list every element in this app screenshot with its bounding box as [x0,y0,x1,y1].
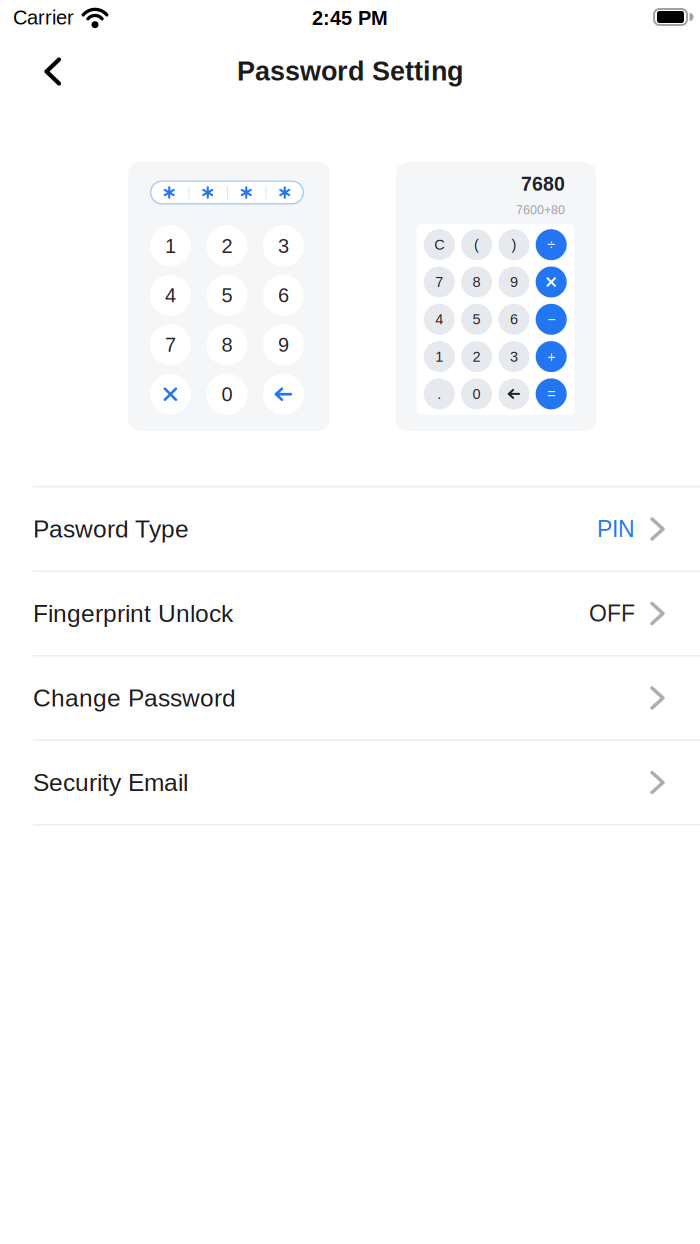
staticText: 2 [221,235,232,257]
staticText: Fingerprint Unlock [33,600,233,627]
button[interactable]: ← [498,378,529,409]
staticText: 3 [278,235,289,257]
button[interactable]: 0 [206,374,247,415]
button[interactable]: Delete [263,374,304,415]
staticText: 7 [435,274,443,290]
staticText: + [547,348,555,365]
button[interactable]: Cancel [150,374,191,415]
button[interactable]: 4 [424,304,455,335]
staticText: OFF [589,601,635,626]
button[interactable]: Back [0,36,61,86]
staticText: . [437,386,441,402]
button[interactable]: C [424,229,455,260]
staticText: Change Password [33,684,236,712]
staticText: 6 [278,284,289,306]
button[interactable]: Pasword Type [0,487,700,570]
button[interactable]: + [536,341,567,372]
staticText: Pasword Type [33,515,189,543]
button[interactable]: − [536,304,567,335]
button[interactable]: Security Email [0,741,700,824]
button[interactable]: ÷ [536,229,567,260]
button[interactable]: 3 [263,225,304,266]
staticText: 6 [510,311,518,327]
button[interactable]: = [536,378,567,409]
staticText: Carrier [13,6,74,29]
staticText: 9 [510,274,518,290]
button[interactable]: 4 [150,275,191,316]
staticText: Security Email [33,769,188,796]
button[interactable]: Change Password [0,656,700,739]
button[interactable]: Fingerprint Unlock [0,572,700,655]
staticText: 7600+80 [516,203,565,217]
staticText: ( [474,237,479,253]
button[interactable]: 6 [263,275,304,316]
button[interactable]: 1 [424,341,455,372]
staticText: − [547,311,555,327]
staticText: ÷ [547,237,555,253]
staticText: 5 [221,284,232,306]
staticText: 1 [435,348,443,365]
button[interactable]: 2 [461,341,492,372]
button[interactable]: 7 [424,266,455,297]
staticText: 0 [473,386,481,402]
staticText: C [434,237,444,253]
button[interactable]: × [536,266,567,297]
button[interactable]: 9 [263,324,304,365]
staticText: 8 [473,274,481,290]
staticText: 9 [278,334,289,356]
staticText: ) [511,237,516,253]
button[interactable]: ) [498,229,529,260]
staticText: 4 [435,311,443,327]
staticText: 2 [473,348,481,365]
staticText: 7680 [521,173,565,195]
staticText: 7 [165,334,176,356]
staticText: 1 [165,235,176,257]
button[interactable]: 2 [206,225,247,266]
staticText: 2:45 PM [312,7,388,29]
button[interactable]: 0 [461,378,492,409]
staticText: 8 [221,334,232,356]
button[interactable]: 8 [206,324,247,365]
staticText: 4 [165,284,176,306]
staticText: 3 [510,348,518,365]
staticText: 0 [221,383,232,405]
button[interactable]: 5 [461,304,492,335]
staticText: PIN [597,516,635,542]
staticText: Password Setting [237,56,463,86]
button[interactable]: . [424,378,455,409]
staticText: 5 [473,311,481,327]
button[interactable]: 3 [498,341,529,372]
button[interactable]: 1 [150,225,191,266]
button[interactable]: 8 [461,266,492,297]
button[interactable]: 9 [498,266,529,297]
button[interactable]: 6 [498,304,529,335]
button[interactable]: 5 [206,275,247,316]
button[interactable]: 7 [150,324,191,365]
button[interactable]: ( [461,229,492,260]
staticText: = [547,386,555,402]
